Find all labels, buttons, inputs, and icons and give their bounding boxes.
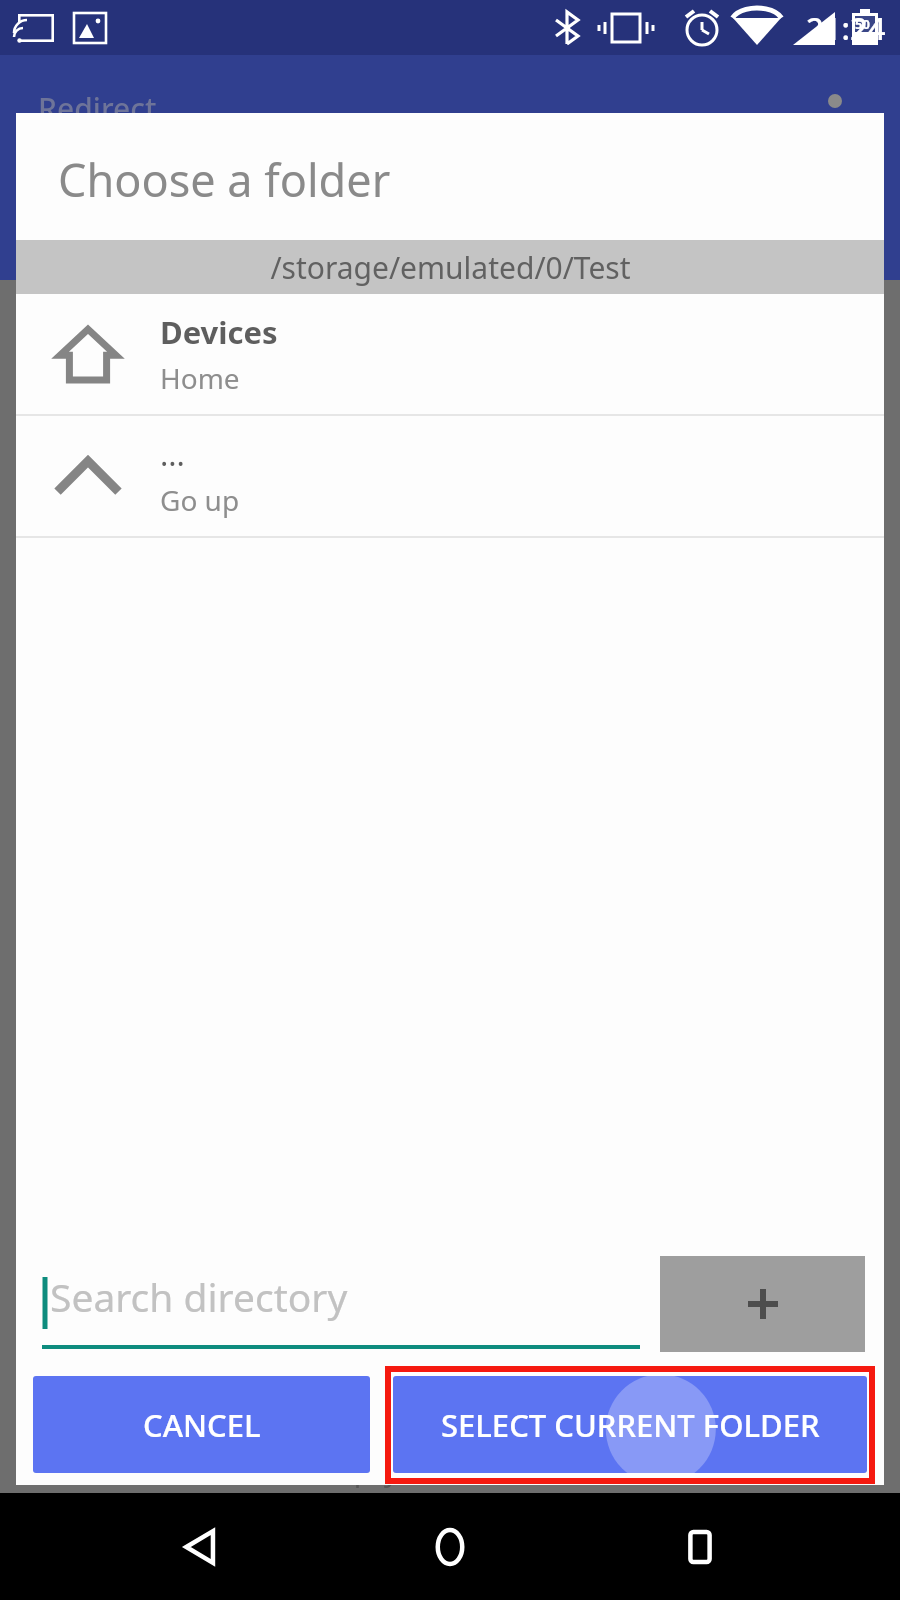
staticText: Go up <box>160 481 240 519</box>
staticText: Redirect <box>38 88 157 129</box>
staticText: Devices <box>160 311 278 353</box>
button[interactable]: Create new folder <box>660 1256 865 1352</box>
staticText: Search directory <box>50 1270 348 1323</box>
staticText: Home <box>160 359 240 397</box>
button[interactable]: Devices <box>16 294 884 414</box>
staticText: /storage/emulated/0/Test <box>270 247 631 288</box>
button[interactable]: SELECT CURRENT FOLDER <box>393 1376 867 1473</box>
button[interactable]: ... <box>16 416 884 536</box>
staticText: 21:24 <box>806 7 886 49</box>
staticText: Delete Empty Folders <box>205 1448 515 1490</box>
staticText: CANCEL <box>143 1404 261 1446</box>
button[interactable]: Search directory <box>42 1259 640 1349</box>
button[interactable]: Back <box>150 1497 250 1597</box>
button[interactable]: Home <box>400 1497 500 1597</box>
button[interactable]: CANCEL <box>33 1376 370 1473</box>
button[interactable]: Recents <box>650 1497 750 1597</box>
staticText: SELECT CURRENT FOLDER <box>441 1404 820 1446</box>
staticText: ... <box>160 433 185 475</box>
staticText: 50 <box>855 15 870 33</box>
staticText: Choose a folder <box>58 149 391 210</box>
